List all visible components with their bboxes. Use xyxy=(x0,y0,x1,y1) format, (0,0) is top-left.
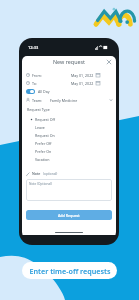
staticText: Note xyxy=(32,171,41,176)
staticText: (optional) xyxy=(43,172,58,176)
staticText: Team: xyxy=(32,98,43,103)
staticText: From: xyxy=(32,73,42,78)
button[interactable]: Request Off xyxy=(26,115,113,123)
button[interactable]: Close xyxy=(106,59,112,65)
button[interactable]: From: xyxy=(26,71,113,79)
button[interactable]: Prefer On xyxy=(26,147,113,155)
staticText: 12:33 xyxy=(28,45,39,50)
button[interactable]: Request On xyxy=(26,131,113,139)
staticText: Note (Optional) xyxy=(29,182,52,186)
staticText: May 01, 2022 xyxy=(71,81,94,86)
staticText: Prefer Off xyxy=(35,141,52,146)
staticText: Add Request xyxy=(58,213,80,218)
staticText: Request On xyxy=(35,133,55,138)
staticText: Request Type xyxy=(27,107,50,112)
staticText: Prefer On xyxy=(35,149,52,154)
button[interactable]: Note (Optional) xyxy=(26,179,112,201)
button[interactable] xyxy=(26,89,35,94)
staticText: May 01, 2022 xyxy=(71,73,94,78)
staticText: All Day xyxy=(38,89,50,94)
button[interactable]: Prefer Off xyxy=(26,139,113,147)
staticText: Vacation xyxy=(35,157,50,162)
button[interactable]: Team: xyxy=(26,96,113,104)
staticText: Request Off xyxy=(35,117,55,122)
button[interactable]: To: xyxy=(26,79,113,87)
button[interactable]: Vacation xyxy=(26,155,113,163)
button[interactable]: Add Request xyxy=(26,210,112,220)
staticText: Enter time-off requests xyxy=(29,266,111,276)
staticText: Family Medicine xyxy=(50,98,78,103)
button[interactable]: Leave xyxy=(26,123,113,131)
staticText: To: xyxy=(32,81,37,86)
staticText: Leave xyxy=(35,125,45,130)
staticText: New request xyxy=(53,58,86,65)
